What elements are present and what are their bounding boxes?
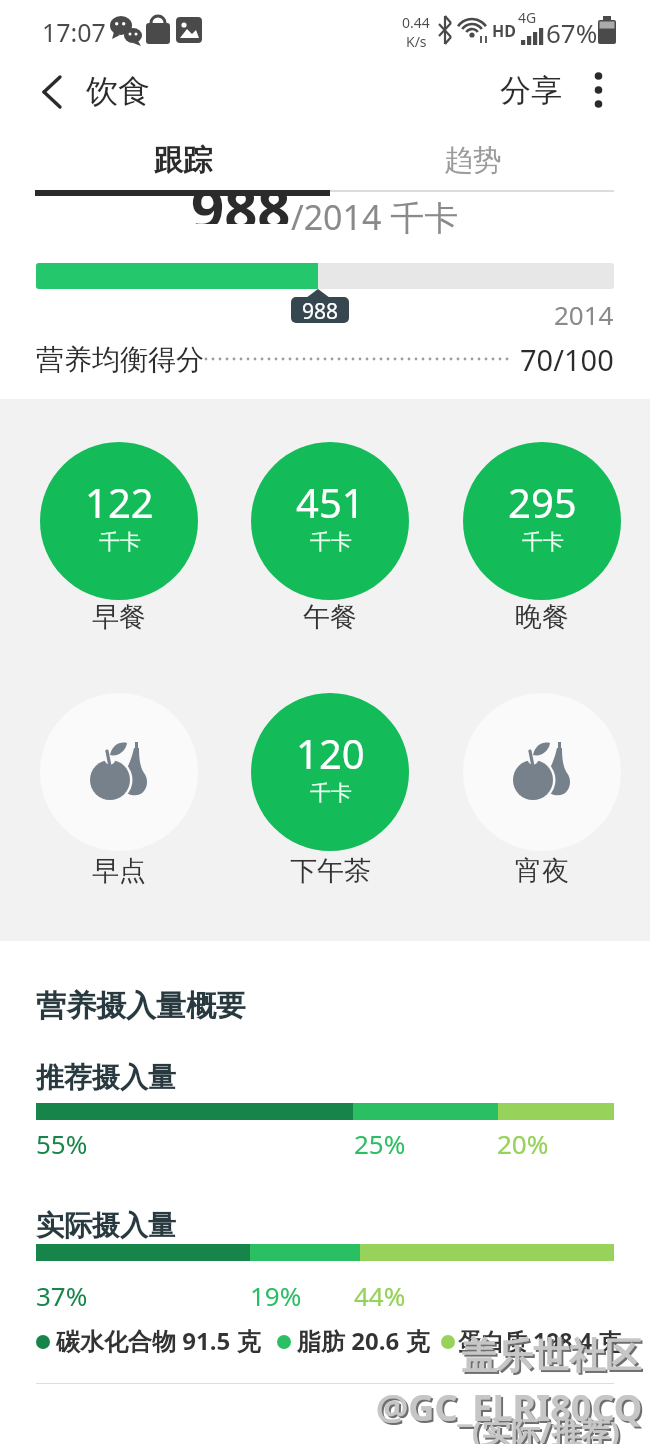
staticText: 跟踪 xyxy=(154,142,212,179)
staticText: 37% xyxy=(36,1278,88,1313)
staticText: 宵夜 xyxy=(515,854,569,888)
button[interactable]: 跟踪 xyxy=(35,124,330,196)
staticText: 70/100 xyxy=(520,340,614,378)
button[interactable] xyxy=(463,693,621,851)
staticText: 44% xyxy=(354,1278,406,1313)
staticText: 分享 xyxy=(500,71,562,110)
staticText: /2014 千卡 xyxy=(291,196,459,240)
button[interactable]: 120 xyxy=(251,693,409,851)
staticText: @GC_ELRI80CQ xyxy=(378,1385,645,1433)
staticText: 盖乐世社区 xyxy=(463,1335,643,1380)
staticText: 实际摄入量 xyxy=(36,1208,176,1243)
staticText: 千卡 xyxy=(310,529,352,555)
staticText: 早餐 xyxy=(92,600,146,634)
staticText: 千卡 xyxy=(522,529,564,555)
staticText: @GC_ELRI80CQ xyxy=(376,1383,643,1431)
staticText: 晚餐 xyxy=(515,600,569,634)
staticText: 推荐摄入量 xyxy=(36,1060,176,1095)
staticText: K/s xyxy=(406,32,427,51)
staticText: 451 xyxy=(296,475,365,529)
staticText: 122 xyxy=(85,475,154,529)
button[interactable]: 295 xyxy=(463,442,621,600)
staticText: 早点 xyxy=(92,854,146,888)
staticText: 19% xyxy=(250,1278,302,1313)
staticText: 0.44 xyxy=(402,13,430,32)
button[interactable]: 分享 xyxy=(500,71,562,110)
staticText: 千卡 xyxy=(310,780,352,806)
staticText: HD xyxy=(492,20,516,42)
button[interactable]: 趋势 xyxy=(330,124,615,196)
staticText: 120 xyxy=(296,726,365,780)
staticText: (实际/推荐) xyxy=(472,1412,620,1444)
staticText: 千卡 xyxy=(99,529,141,555)
button[interactable]: 122 xyxy=(40,442,198,600)
staticText: 饮食 xyxy=(86,71,150,111)
staticText: 营养摄入量概要 xyxy=(36,987,246,1025)
staticText: 脂肪 20.6 克 xyxy=(297,1324,430,1357)
staticText: 55% xyxy=(36,1126,88,1161)
staticText: 碳水化合物 91.5 克 xyxy=(56,1324,261,1357)
staticText: 盖乐世社区 xyxy=(461,1333,641,1378)
staticText: 25% xyxy=(354,1126,406,1161)
staticText: 4G xyxy=(518,8,537,27)
button[interactable] xyxy=(576,68,620,112)
button[interactable] xyxy=(40,693,198,851)
staticText: 988 xyxy=(191,196,291,224)
staticText: 蛋白质 198.4 克 xyxy=(458,1325,622,1356)
staticText: 295 xyxy=(508,475,577,529)
staticText: 988 xyxy=(302,297,339,323)
staticText: 午餐 xyxy=(303,600,357,634)
staticText: 17:07 xyxy=(42,15,106,49)
staticText: 67% xyxy=(546,15,598,50)
button[interactable]: 451 xyxy=(251,442,409,600)
staticText: 2014 xyxy=(554,297,614,325)
button[interactable] xyxy=(30,70,74,114)
staticText: 营养均衡得分 xyxy=(36,342,204,377)
staticText: 趋势 xyxy=(444,142,502,179)
staticText: 下午茶 xyxy=(290,854,371,888)
staticText: (实际/推荐) xyxy=(474,1414,622,1444)
staticText: 20% xyxy=(497,1126,549,1161)
